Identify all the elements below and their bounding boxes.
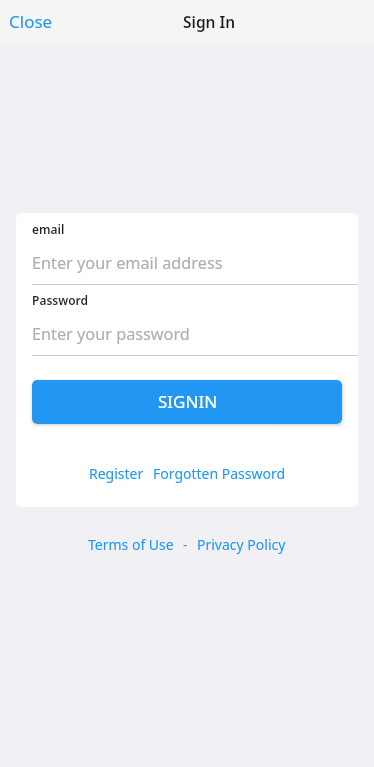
button[interactable]: Terms of Use [88, 535, 174, 554]
staticText: SIGNIN [158, 390, 218, 413]
staticText: - [183, 535, 188, 554]
staticText: Password [32, 292, 89, 308]
button[interactable]: SIGNIN [32, 380, 342, 424]
button[interactable]: Password [16, 285, 358, 356]
staticText: Terms of Use [88, 535, 174, 554]
staticText: Privacy Policy [197, 535, 286, 554]
staticText: Close [9, 10, 53, 33]
button[interactable]: Register [89, 464, 144, 483]
button[interactable]: Forgotten Password [153, 464, 286, 483]
staticText: email [32, 221, 65, 237]
button[interactable]: Close [0, 2, 63, 41]
button[interactable]: Privacy Policy [197, 535, 286, 554]
staticText: Forgotten Password [153, 464, 286, 483]
button[interactable]: email [16, 213, 358, 285]
staticText: Register [89, 464, 144, 483]
staticText: Enter your email address [32, 252, 223, 274]
staticText: Sign In [183, 11, 236, 32]
staticText: Enter your password [32, 323, 190, 345]
